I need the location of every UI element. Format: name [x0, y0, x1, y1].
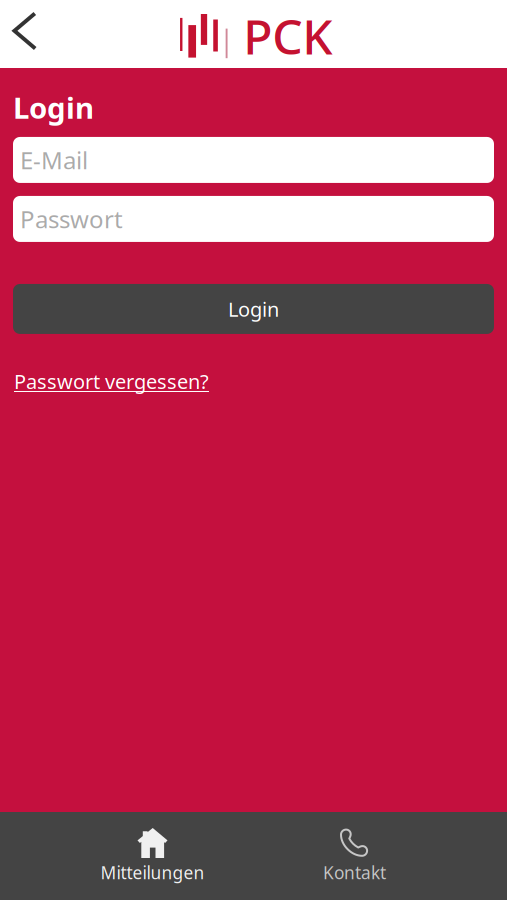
staticText: Passwort: [20, 203, 123, 235]
staticText: Kontakt: [323, 861, 386, 884]
button[interactable]: Passwort vergessen?: [14, 368, 209, 395]
staticText: E-Mail: [20, 144, 88, 176]
button[interactable]: Passwort: [13, 196, 494, 242]
staticText: Login: [228, 296, 279, 322]
staticText: Passwort vergessen?: [14, 368, 209, 395]
staticText: Login: [13, 88, 94, 127]
staticText: PCK: [243, 4, 332, 68]
button[interactable]: E-Mail: [13, 137, 494, 183]
button[interactable]: Mitteilungen: [51, 812, 253, 900]
button[interactable]: Login: [13, 284, 494, 334]
staticText: Mitteilungen: [100, 861, 204, 884]
button[interactable]: Kontakt: [253, 812, 455, 900]
button[interactable]: Back: [0, 0, 47, 68]
